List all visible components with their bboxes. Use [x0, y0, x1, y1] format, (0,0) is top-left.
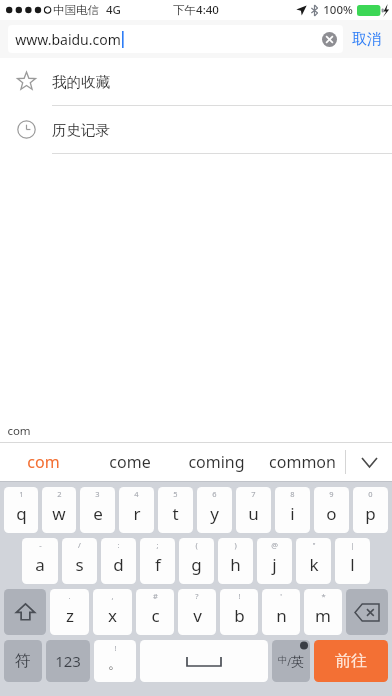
- staticText: .: [68, 591, 71, 601]
- staticText: d: [113, 553, 124, 576]
- staticText: b: [234, 604, 245, 627]
- button[interactable]: ): [218, 538, 253, 584]
- button[interactable]: 1: [4, 487, 38, 533]
- staticText: 100%: [323, 2, 353, 18]
- button[interactable]: 前往: [314, 640, 388, 682]
- button[interactable]: ': [262, 589, 300, 635]
- button[interactable]: !: [220, 589, 258, 635]
- button[interactable]: come: [87, 443, 173, 481]
- button[interactable]: .: [50, 589, 89, 635]
- staticText: /: [78, 540, 81, 550]
- button[interactable]: -: [22, 538, 58, 584]
- button[interactable]: ;: [140, 538, 175, 584]
- staticText: 3: [95, 489, 100, 499]
- staticText: l: [350, 553, 355, 576]
- staticText: t: [172, 502, 179, 525]
- button[interactable]: Space: [140, 640, 268, 682]
- staticText: h: [230, 553, 241, 576]
- staticText: z: [66, 604, 74, 627]
- button[interactable]: www.baidu.com: [8, 25, 343, 53]
- button[interactable]: 123: [46, 640, 90, 682]
- button[interactable]: |: [335, 538, 370, 584]
- staticText: !: [238, 591, 241, 601]
- staticText: 历史记录: [52, 121, 110, 139]
- staticText: 4G: [106, 2, 121, 18]
- button[interactable]: coming: [173, 443, 259, 481]
- staticText: 符: [15, 651, 31, 671]
- button[interactable]: 5: [158, 487, 193, 533]
- button[interactable]: ,: [93, 589, 132, 635]
- button[interactable]: 我的收藏: [0, 58, 392, 105]
- staticText: /: [287, 655, 291, 669]
- button[interactable]: 2: [42, 487, 76, 533]
- button[interactable]: (: [179, 538, 214, 584]
- staticText: 0: [368, 489, 373, 499]
- staticText: ,: [111, 591, 114, 601]
- button[interactable]: !: [94, 640, 136, 682]
- button[interactable]: More candidates: [346, 443, 392, 481]
- staticText: e: [93, 502, 103, 525]
- staticText: -: [39, 540, 42, 550]
- button[interactable]: common: [259, 443, 345, 481]
- staticText: 4: [134, 489, 139, 499]
- staticText: s: [75, 553, 84, 576]
- button[interactable]: 0: [353, 487, 388, 533]
- staticText: #: [153, 591, 158, 601]
- button[interactable]: 7: [236, 487, 271, 533]
- button[interactable]: Clear: [322, 32, 337, 47]
- button[interactable]: 取消: [352, 30, 382, 49]
- staticText: 123: [55, 651, 81, 671]
- button[interactable]: Switch language: [272, 640, 310, 682]
- staticText: c: [151, 604, 160, 627]
- staticText: a: [35, 553, 45, 576]
- staticText: coming: [188, 451, 245, 473]
- staticText: 英: [291, 653, 304, 669]
- staticText: 9: [329, 489, 334, 499]
- staticText: 我的收藏: [52, 73, 110, 91]
- staticText: |: [350, 540, 355, 550]
- staticText: (: [195, 540, 198, 550]
- staticText: x: [108, 604, 117, 627]
- button[interactable]: /: [62, 538, 97, 584]
- staticText: v: [193, 604, 202, 627]
- staticText: :: [117, 540, 120, 550]
- staticText: o: [326, 502, 337, 525]
- staticText: q: [16, 502, 27, 525]
- staticText: u: [248, 502, 259, 525]
- staticText: 7: [251, 489, 256, 499]
- staticText: ?: [195, 591, 199, 601]
- button[interactable]: 4: [119, 487, 154, 533]
- button[interactable]: 6: [197, 487, 232, 533]
- button[interactable]: ?: [178, 589, 216, 635]
- button[interactable]: 历史记录: [0, 106, 392, 153]
- button[interactable]: :: [101, 538, 136, 584]
- staticText: com: [7, 423, 31, 439]
- staticText: @: [271, 540, 278, 550]
- staticText: i: [290, 502, 295, 525]
- staticText: w: [52, 502, 66, 525]
- staticText: com: [27, 451, 60, 473]
- staticText: k: [309, 553, 319, 576]
- button[interactable]: #: [136, 589, 174, 635]
- button[interactable]: @: [257, 538, 292, 584]
- button[interactable]: ": [296, 538, 331, 584]
- button[interactable]: Shift: [4, 589, 46, 635]
- staticText: 2: [57, 489, 62, 499]
- staticText: p: [365, 502, 376, 525]
- staticText: ': [280, 591, 282, 601]
- staticText: ;: [156, 540, 159, 550]
- staticText: 下午4:40: [173, 2, 219, 18]
- button[interactable]: 符: [4, 640, 42, 682]
- button[interactable]: 8: [275, 487, 310, 533]
- button[interactable]: *: [304, 589, 342, 635]
- button[interactable]: 3: [80, 487, 115, 533]
- staticText: 1: [19, 489, 24, 499]
- button[interactable]: Backspace: [346, 589, 388, 635]
- button[interactable]: 9: [314, 487, 349, 533]
- staticText: 6: [212, 489, 217, 499]
- staticText: n: [276, 604, 287, 627]
- staticText: 8: [290, 489, 295, 499]
- staticText: *: [321, 591, 326, 601]
- staticText: www.baidu.com: [15, 30, 121, 49]
- button[interactable]: com: [0, 443, 87, 481]
